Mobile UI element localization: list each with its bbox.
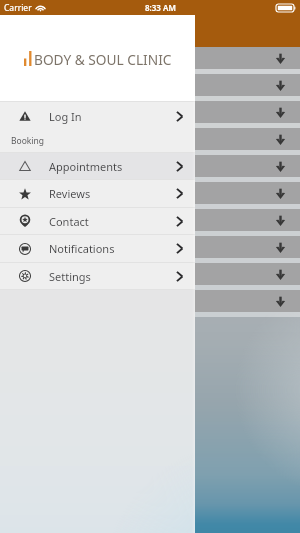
staticText: Contact [49, 214, 89, 229]
button[interactable]: Settings [0, 263, 195, 289]
staticText: Appointments [49, 159, 123, 174]
staticText: Booking [11, 135, 45, 147]
staticText: Notifications [49, 241, 115, 256]
staticText: Carrier [4, 2, 32, 14]
button[interactable]: Log In [0, 102, 195, 130]
button[interactable]: Notifications [0, 235, 195, 262]
staticText: Reviews [49, 186, 91, 201]
button[interactable]: Reviews [0, 180, 195, 207]
staticText: BODY & SOUL CLINIC [34, 50, 172, 69]
staticText: Log In [49, 109, 82, 124]
staticText: Settings [49, 269, 91, 284]
button[interactable]: Contact [0, 208, 195, 234]
button[interactable]: Appointments [0, 153, 195, 179]
staticText: 8:33 AM [145, 2, 176, 13]
